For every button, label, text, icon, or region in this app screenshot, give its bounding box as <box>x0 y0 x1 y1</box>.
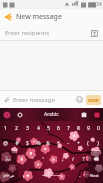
staticText: ! <box>21 156 23 163</box>
button[interactable]: 3 <box>22 121 33 136</box>
button[interactable]: Settings <box>13 108 26 121</box>
staticText: , <box>23 172 25 179</box>
staticText: Next <box>90 173 99 178</box>
staticText: New message <box>16 12 62 22</box>
staticText: & <box>46 140 50 147</box>
staticText: =\< <box>5 157 12 162</box>
button[interactable]: 7 <box>63 121 73 136</box>
button[interactable]: 9 <box>83 121 93 136</box>
staticText: SEND <box>88 98 99 103</box>
button[interactable]: 1 <box>0 121 11 136</box>
staticText: 2 <box>15 125 18 132</box>
button[interactable]: SEND <box>86 95 101 105</box>
staticText: % <box>36 140 41 147</box>
button[interactable]: @ <box>0 136 11 151</box>
staticText: + <box>77 140 80 147</box>
button[interactable]: 2 <box>11 121 22 136</box>
button[interactable]: More <box>90 108 103 121</box>
button[interactable]: & <box>43 136 53 151</box>
button[interactable]: Clipboard <box>77 108 90 121</box>
button[interactable]: ض١٢٣ <box>0 167 18 183</box>
button[interactable]: 0 <box>93 121 103 136</box>
staticText: " <box>31 156 34 163</box>
button[interactable]: Delete <box>88 151 103 167</box>
button[interactable]: : <box>48 151 58 167</box>
button[interactable]: ) <box>93 136 103 151</box>
staticText: ) <box>97 140 99 147</box>
button[interactable]: Pick contacts <box>87 26 101 40</box>
staticText: ' <box>42 156 44 163</box>
staticText: ; <box>62 156 64 163</box>
staticText: 6 <box>57 125 60 132</box>
button[interactable]: ' <box>38 151 48 167</box>
staticText: ? <box>82 156 85 163</box>
staticText: . <box>79 172 81 179</box>
staticText: - <box>67 140 69 147</box>
staticText: / <box>72 156 74 163</box>
staticText: 1 <box>4 125 7 132</box>
button[interactable]: 8 <box>73 121 83 136</box>
staticText: 5 <box>47 125 50 132</box>
button[interactable]: 4 <box>33 121 43 136</box>
staticText: 4 <box>37 125 40 132</box>
staticText: # <box>15 140 19 147</box>
button[interactable]: Enter recipients <box>0 25 103 40</box>
button[interactable]: ? <box>78 151 88 167</box>
button[interactable]: ( <box>83 136 93 151</box>
button[interactable]: ! <box>16 151 27 167</box>
staticText: 9 <box>87 125 90 132</box>
button[interactable]: Space <box>29 167 74 183</box>
button[interactable]: 6 <box>53 121 63 136</box>
staticText: 8 <box>77 125 80 132</box>
staticText: 18:34 <box>89 1 102 8</box>
staticText: : <box>52 156 54 163</box>
button[interactable]: , <box>18 167 29 183</box>
button[interactable]: Arabic <box>44 111 59 118</box>
button[interactable]: # <box>11 136 22 151</box>
button[interactable]: Enter message <box>13 96 73 104</box>
button[interactable]: $ <box>22 136 33 151</box>
button[interactable]: - <box>63 136 73 151</box>
staticText: 3 <box>26 125 29 132</box>
button[interactable]: * <box>53 136 63 151</box>
button[interactable]: / <box>68 151 78 167</box>
staticText: 7 <box>67 125 70 132</box>
button[interactable]: Theme <box>0 108 13 121</box>
button[interactable]: Next <box>85 167 103 183</box>
button[interactable]: Back <box>0 9 16 25</box>
staticText: * <box>57 140 60 147</box>
button[interactable]: " <box>27 151 38 167</box>
button[interactable]: + <box>73 136 83 151</box>
button[interactable]: 5 <box>43 121 53 136</box>
staticText: 0 <box>97 125 100 132</box>
staticText: $ <box>26 140 29 147</box>
staticText: ض١٢٣ <box>3 173 15 178</box>
staticText: @ <box>3 140 8 147</box>
staticText: ( <box>87 140 89 147</box>
button[interactable]: Emoji <box>73 93 86 106</box>
button[interactable]: . <box>74 167 85 183</box>
button[interactable]: =\< <box>0 151 16 167</box>
button[interactable]: % <box>33 136 43 151</box>
button[interactable]: Attach <box>0 93 13 106</box>
staticText: Enter recipients <box>5 29 87 37</box>
button[interactable]: ; <box>58 151 68 167</box>
